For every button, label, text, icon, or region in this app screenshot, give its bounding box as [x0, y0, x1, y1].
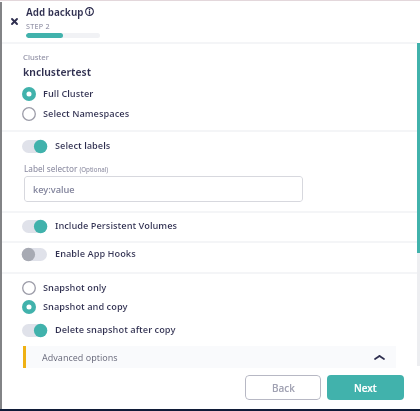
button[interactable]: Advanced options — [23, 346, 396, 368]
staticText: knclustertest — [23, 65, 92, 79]
button[interactable] — [22, 243, 159, 265]
staticText: Enable App Hooks — [55, 247, 136, 260]
button[interactable]: Close — [7, 14, 22, 29]
staticText: Select Namespaces — [43, 107, 130, 120]
button[interactable] — [22, 278, 129, 298]
button[interactable]: Next — [327, 375, 404, 400]
staticText: Snapshot only — [43, 281, 107, 294]
staticText: Snapshot and copy — [43, 300, 128, 313]
button[interactable] — [22, 215, 219, 237]
button[interactable] — [22, 297, 153, 317]
staticText: Delete snapshot after copy — [55, 323, 176, 336]
button[interactable] — [22, 319, 219, 341]
staticText: Include Persistent Volumes — [55, 219, 178, 232]
staticText: Full Cluster — [43, 87, 94, 100]
button[interactable]: key:value — [24, 176, 303, 202]
staticText: Advanced options — [42, 351, 118, 363]
button[interactable]: Info — [85, 7, 94, 16]
staticText: Select labels — [55, 139, 111, 152]
staticText: Next — [354, 381, 377, 395]
staticText: STEP 2 — [26, 21, 50, 31]
button[interactable]: Back — [245, 375, 321, 400]
staticText: Add backup — [26, 6, 84, 19]
staticText: Label selector (Optional) — [24, 163, 109, 174]
staticText: Cluster — [23, 52, 49, 63]
button[interactable] — [22, 135, 141, 157]
button[interactable] — [22, 104, 153, 124]
button[interactable] — [22, 84, 123, 104]
staticText: key:value — [33, 183, 75, 196]
staticText: Back — [272, 381, 295, 395]
